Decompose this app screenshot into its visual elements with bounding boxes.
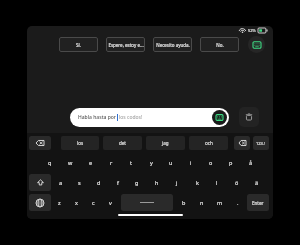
button[interactable]: n [193, 193, 211, 211]
button[interactable]: ö [227, 173, 247, 191]
staticText: Necesito ayuda. [156, 42, 190, 48]
button[interactable]: No. [200, 37, 239, 52]
button[interactable]: i [181, 153, 201, 171]
button[interactable]: j [167, 173, 187, 191]
staticText: u [169, 159, 173, 166]
staticText: c [92, 199, 95, 206]
button[interactable]: Necesito ayuda. [153, 37, 192, 52]
staticText: 123.! [256, 141, 266, 146]
staticText: och [205, 140, 213, 146]
button[interactable]: m [211, 193, 229, 211]
staticText: b [182, 199, 186, 206]
staticText: q [48, 159, 52, 166]
staticText: y [150, 159, 153, 166]
button[interactable]: r [101, 153, 121, 171]
staticText: n [200, 199, 204, 206]
staticText: Sí. [76, 42, 81, 48]
staticText: g [135, 179, 139, 186]
staticText: No. [216, 42, 224, 48]
staticText: k [196, 179, 199, 186]
button[interactable]: o [201, 153, 221, 171]
button[interactable]: e [81, 153, 101, 171]
button[interactable]: g [127, 173, 147, 191]
button[interactable]: Habla hasta por [70, 108, 229, 127]
button[interactable]: d [89, 173, 108, 191]
staticText: i [190, 159, 192, 166]
staticText: jag [162, 140, 169, 146]
button[interactable]: k [187, 173, 207, 191]
button[interactable]: p [221, 153, 241, 171]
staticText: x [75, 199, 78, 206]
button[interactable]: y [141, 153, 161, 171]
button[interactable]: Espacio [121, 194, 173, 211]
staticText: o [209, 159, 213, 166]
button[interactable]: Sí. [59, 37, 98, 52]
staticText: h [155, 179, 159, 186]
staticText: r [110, 159, 113, 166]
staticText: p [229, 159, 233, 166]
staticText: ö [235, 179, 239, 186]
button[interactable]: å [241, 153, 261, 171]
button[interactable]: 123.! [253, 136, 269, 150]
button[interactable]: b [175, 193, 193, 211]
button[interactable]: f [108, 173, 127, 191]
staticText: m [217, 199, 223, 206]
button[interactable]: w [60, 153, 81, 171]
staticText: t [130, 159, 132, 166]
button[interactable]: det [103, 136, 142, 150]
staticText: a [59, 179, 63, 186]
staticText: Espere, estoy e... [108, 42, 144, 48]
button[interactable]: q [39, 153, 60, 171]
button[interactable]: v [102, 193, 119, 211]
button[interactable]: Mostrar teclado [248, 36, 265, 53]
staticText: d [97, 179, 101, 186]
staticText: j [176, 179, 178, 186]
button[interactable]: Enter [247, 194, 269, 211]
button[interactable]: z [51, 193, 68, 211]
staticText: s [78, 179, 81, 186]
button[interactable]: h [147, 173, 167, 191]
staticText: los [77, 140, 84, 146]
staticText: å [249, 159, 253, 166]
staticText: Enter [252, 200, 264, 206]
button[interactable]: Mayúsculas [29, 174, 51, 191]
staticText: e [89, 159, 93, 166]
staticText: 52% [248, 28, 256, 33]
button[interactable]: Retroceso [29, 136, 51, 150]
button[interactable]: ä [247, 173, 267, 191]
staticText: z [58, 199, 61, 206]
button[interactable]: u [161, 153, 181, 171]
button[interactable]: los [61, 136, 99, 150]
staticText: . [237, 199, 239, 206]
button[interactable]: Enviar [212, 110, 227, 125]
button[interactable]: s [70, 173, 89, 191]
staticText: Habla hasta por [78, 114, 116, 121]
staticText: w [68, 159, 73, 166]
button[interactable]: och [189, 136, 228, 150]
staticText: det [119, 140, 126, 146]
staticText: f [117, 179, 119, 186]
button[interactable]: c [85, 193, 102, 211]
staticText: los codos! [119, 114, 212, 121]
button[interactable]: l [207, 173, 227, 191]
button[interactable]: t [121, 153, 141, 171]
button[interactable]: x [68, 193, 85, 211]
button[interactable]: . [229, 193, 247, 211]
button[interactable]: Espere, estoy e... [106, 37, 145, 52]
staticText: v [109, 199, 112, 206]
staticText: ä [255, 179, 259, 186]
button[interactable]: Borrar [239, 107, 259, 127]
staticText: l [216, 179, 218, 186]
button[interactable]: Borrar [234, 136, 250, 150]
button[interactable]: jag [146, 136, 185, 150]
button[interactable]: Cambiar idioma [29, 194, 51, 211]
button[interactable]: a [51, 173, 70, 191]
